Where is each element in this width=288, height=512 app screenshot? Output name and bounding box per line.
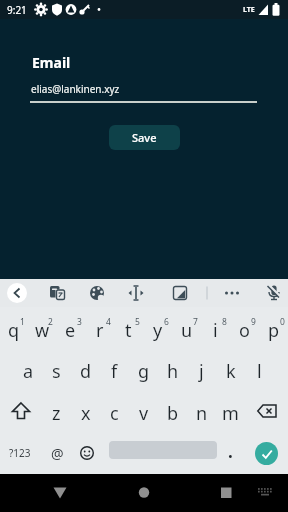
button[interactable]: s	[42, 349, 71, 390]
staticText: b	[167, 401, 179, 426]
staticText: i	[213, 318, 218, 343]
staticText: n	[196, 401, 208, 426]
button[interactable]: w	[28, 307, 56, 349]
staticText: l	[257, 359, 262, 384]
staticText: u	[181, 318, 193, 343]
button[interactable]: x	[71, 390, 100, 432]
button[interactable]: r	[85, 307, 114, 349]
staticText: d	[80, 359, 92, 384]
staticText: 0	[280, 316, 285, 328]
staticText: p	[268, 318, 280, 343]
staticText: 1	[20, 316, 25, 328]
button[interactable]: t	[114, 307, 143, 349]
button[interactable]	[45, 281, 69, 305]
staticText: Save	[132, 130, 157, 145]
staticText: w	[35, 318, 50, 343]
button[interactable]: q	[0, 307, 28, 349]
button[interactable]: z	[42, 390, 71, 432]
staticText: q	[8, 318, 20, 343]
staticText: f	[111, 359, 118, 384]
button[interactable]	[211, 478, 241, 508]
staticText: y	[153, 318, 163, 343]
button[interactable]: n	[187, 390, 216, 432]
button[interactable]: e	[56, 307, 85, 349]
staticText: 9:21	[7, 3, 27, 17]
staticText: r	[96, 318, 104, 343]
button[interactable]: a	[14, 349, 42, 390]
staticText: .	[228, 440, 233, 463]
staticText: x	[81, 401, 91, 426]
staticText: c	[110, 401, 119, 426]
button[interactable]: Save	[109, 125, 180, 150]
button[interactable]: f	[100, 349, 129, 390]
button[interactable]: l	[245, 349, 274, 390]
button[interactable]: c	[100, 390, 129, 432]
staticText: @	[51, 444, 64, 463]
button[interactable]: k	[216, 349, 245, 390]
button[interactable]	[262, 281, 286, 305]
staticText: elias@lankinen.xyz	[31, 82, 120, 96]
button[interactable]: m	[216, 390, 245, 432]
staticText: m	[222, 401, 239, 426]
staticText: 8	[222, 316, 227, 328]
button[interactable]: d	[71, 349, 100, 390]
button[interactable]	[4, 281, 28, 305]
staticText: 9	[251, 316, 256, 328]
button[interactable]	[245, 432, 288, 474]
staticText: s	[52, 359, 61, 384]
staticText: 7	[193, 316, 198, 328]
button[interactable]: o	[230, 307, 259, 349]
staticText: v	[139, 401, 149, 426]
staticText: 5	[135, 316, 140, 328]
button[interactable]: .	[216, 432, 245, 474]
button[interactable]	[129, 478, 159, 508]
staticText: j	[199, 359, 204, 384]
staticText: o	[239, 318, 250, 343]
staticText: e	[65, 318, 76, 343]
staticText: h	[167, 359, 179, 384]
button[interactable]	[101, 432, 216, 474]
button[interactable]	[220, 281, 244, 305]
staticText: k	[226, 359, 236, 384]
button[interactable]: g	[129, 349, 158, 390]
staticText: 2	[48, 316, 53, 328]
button[interactable]	[168, 281, 192, 305]
button[interactable]	[45, 478, 75, 508]
button[interactable]: u	[172, 307, 201, 349]
staticText: a	[23, 359, 34, 384]
button[interactable]: h	[158, 349, 187, 390]
button[interactable]	[85, 281, 109, 305]
button[interactable]: p	[259, 307, 288, 349]
staticText: 4	[106, 316, 111, 328]
staticText: g	[138, 359, 150, 384]
button[interactable]: y	[143, 307, 172, 349]
staticText: ?123	[9, 446, 31, 460]
button[interactable]: j	[187, 349, 216, 390]
staticText: LTE	[243, 5, 255, 15]
staticText: 3	[77, 316, 82, 328]
button[interactable]: i	[201, 307, 230, 349]
button[interactable]: @	[43, 432, 72, 474]
button[interactable]: ?123	[0, 432, 43, 474]
button[interactable]: b	[158, 390, 187, 432]
button[interactable]	[124, 281, 148, 305]
button[interactable]	[72, 432, 101, 474]
staticText: z	[52, 401, 61, 426]
staticText: Email	[32, 53, 71, 72]
staticText: t	[125, 318, 132, 343]
button[interactable]	[0, 390, 42, 432]
button[interactable]: v	[129, 390, 158, 432]
staticText: 6	[164, 316, 169, 328]
button[interactable]	[245, 390, 288, 432]
